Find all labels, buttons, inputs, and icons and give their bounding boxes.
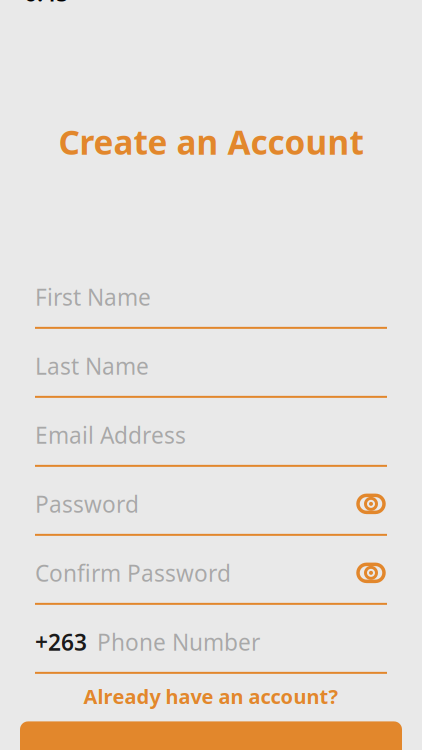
staticText: Create an Account	[58, 120, 363, 164]
button[interactable]: Show password	[355, 559, 387, 587]
staticText: +263	[35, 627, 87, 657]
button[interactable]	[20, 721, 402, 750]
staticText: Password	[35, 489, 139, 519]
button[interactable]: Already have an account?	[0, 680, 422, 712]
button[interactable]: Show password	[355, 490, 387, 518]
staticText: Email Address	[35, 420, 186, 450]
staticText: Confirm Password	[35, 558, 231, 588]
staticText: Already have an account?	[83, 683, 338, 709]
staticText: First Name	[35, 282, 151, 312]
staticText: 6:45	[24, 0, 69, 8]
staticText: Last Name	[35, 351, 149, 381]
staticText: Phone Number	[97, 627, 260, 657]
